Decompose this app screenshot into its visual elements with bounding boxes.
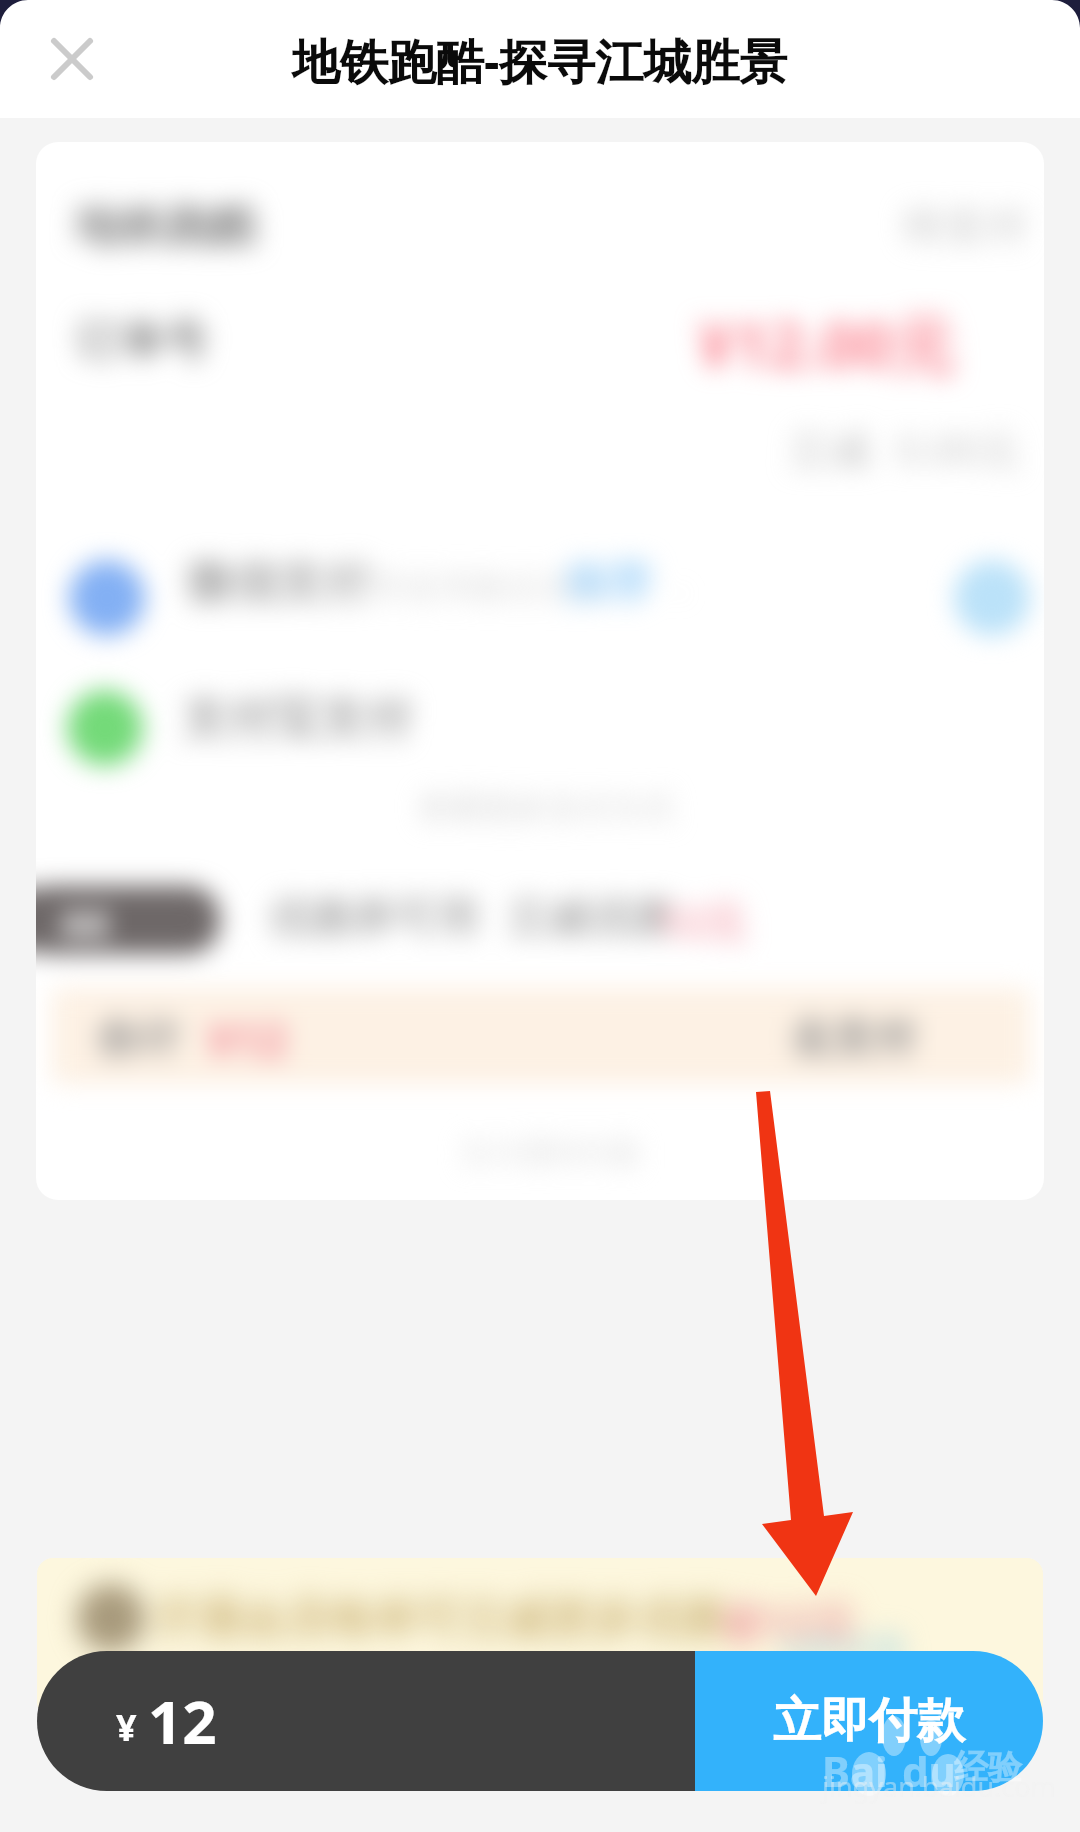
staticText: 经验 bbox=[954, 1746, 1022, 1789]
staticText: 0.00元 bbox=[896, 420, 1022, 477]
staticText: 待支付 bbox=[902, 200, 1028, 253]
staticText: 推荐 bbox=[564, 556, 652, 611]
staticText: 立即开通 bbox=[777, 1630, 905, 1670]
staticText: 12元 bbox=[656, 892, 747, 949]
staticText: jingyan.baidu.com bbox=[822, 1768, 1056, 1805]
staticText: 12 bbox=[148, 1680, 217, 1762]
button[interactable]: ¥ bbox=[37, 1651, 695, 1791]
staticText: 开通会员每单可立减更多优惠 bbox=[153, 1592, 725, 1647]
staticText: 微信支付 bbox=[186, 554, 370, 612]
staticText: 优惠券可用 bbox=[268, 892, 478, 945]
staticText: 合计 bbox=[96, 1012, 180, 1065]
staticText: 省12元 bbox=[717, 1592, 856, 1652]
staticText: ¥12 bbox=[208, 1008, 287, 1071]
staticText: ¥12.00元 bbox=[698, 302, 955, 387]
staticText: 订单号 bbox=[76, 314, 208, 369]
staticText: 推荐使用微信支付 bbox=[336, 566, 608, 609]
staticText: 地铁跑酷 bbox=[74, 198, 258, 256]
staticText: 去支付 bbox=[790, 1012, 916, 1065]
staticText: ¥ bbox=[116, 1703, 137, 1752]
button[interactable]: Close bbox=[32, 19, 112, 99]
staticText: 44 bbox=[60, 894, 109, 951]
staticText: du bbox=[902, 1742, 956, 1799]
staticText: 立即付款 bbox=[773, 1691, 965, 1751]
staticText: Bai bbox=[822, 1742, 888, 1799]
staticText: 立减 bbox=[788, 424, 872, 477]
button[interactable]: 立即付款 bbox=[695, 1651, 1043, 1791]
staticText: 地铁跑酷-探寻江城胜景 bbox=[292, 28, 788, 94]
staticText: 支付宝支付 bbox=[182, 690, 412, 748]
staticText: 立减优惠 bbox=[506, 892, 674, 945]
